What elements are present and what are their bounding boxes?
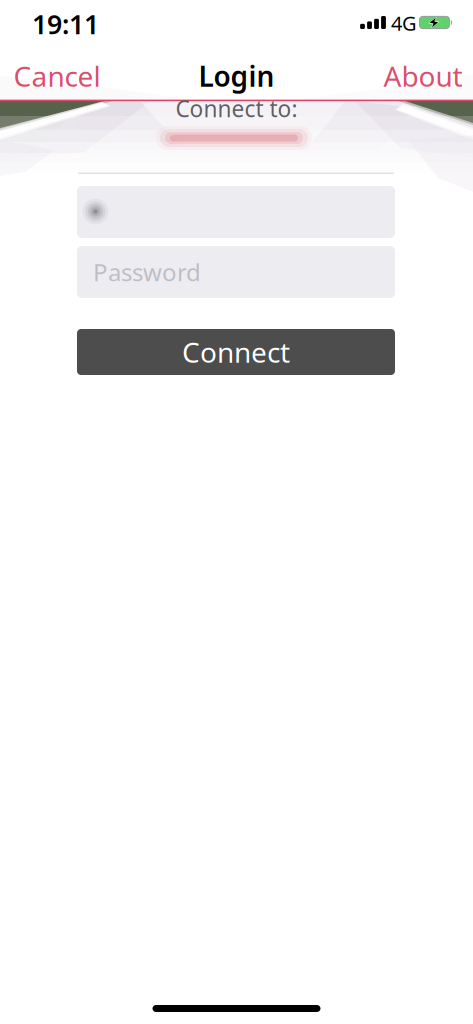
- staticText: Cancel: [13, 57, 100, 95]
- button[interactable]: Password: [77, 246, 395, 298]
- staticText: Password: [93, 256, 201, 288]
- staticText: 19:11: [32, 6, 99, 42]
- staticText: About: [383, 57, 462, 95]
- button[interactable]: About: [383, 57, 462, 95]
- staticText: 4G: [391, 10, 417, 36]
- staticText: Login: [198, 57, 274, 95]
- staticText: Connect to:: [175, 93, 297, 123]
- button[interactable]: Connect: [77, 329, 395, 375]
- button[interactable]: Username: [77, 186, 395, 238]
- button[interactable]: Cancel: [13, 57, 100, 95]
- staticText: Connect: [182, 333, 290, 371]
